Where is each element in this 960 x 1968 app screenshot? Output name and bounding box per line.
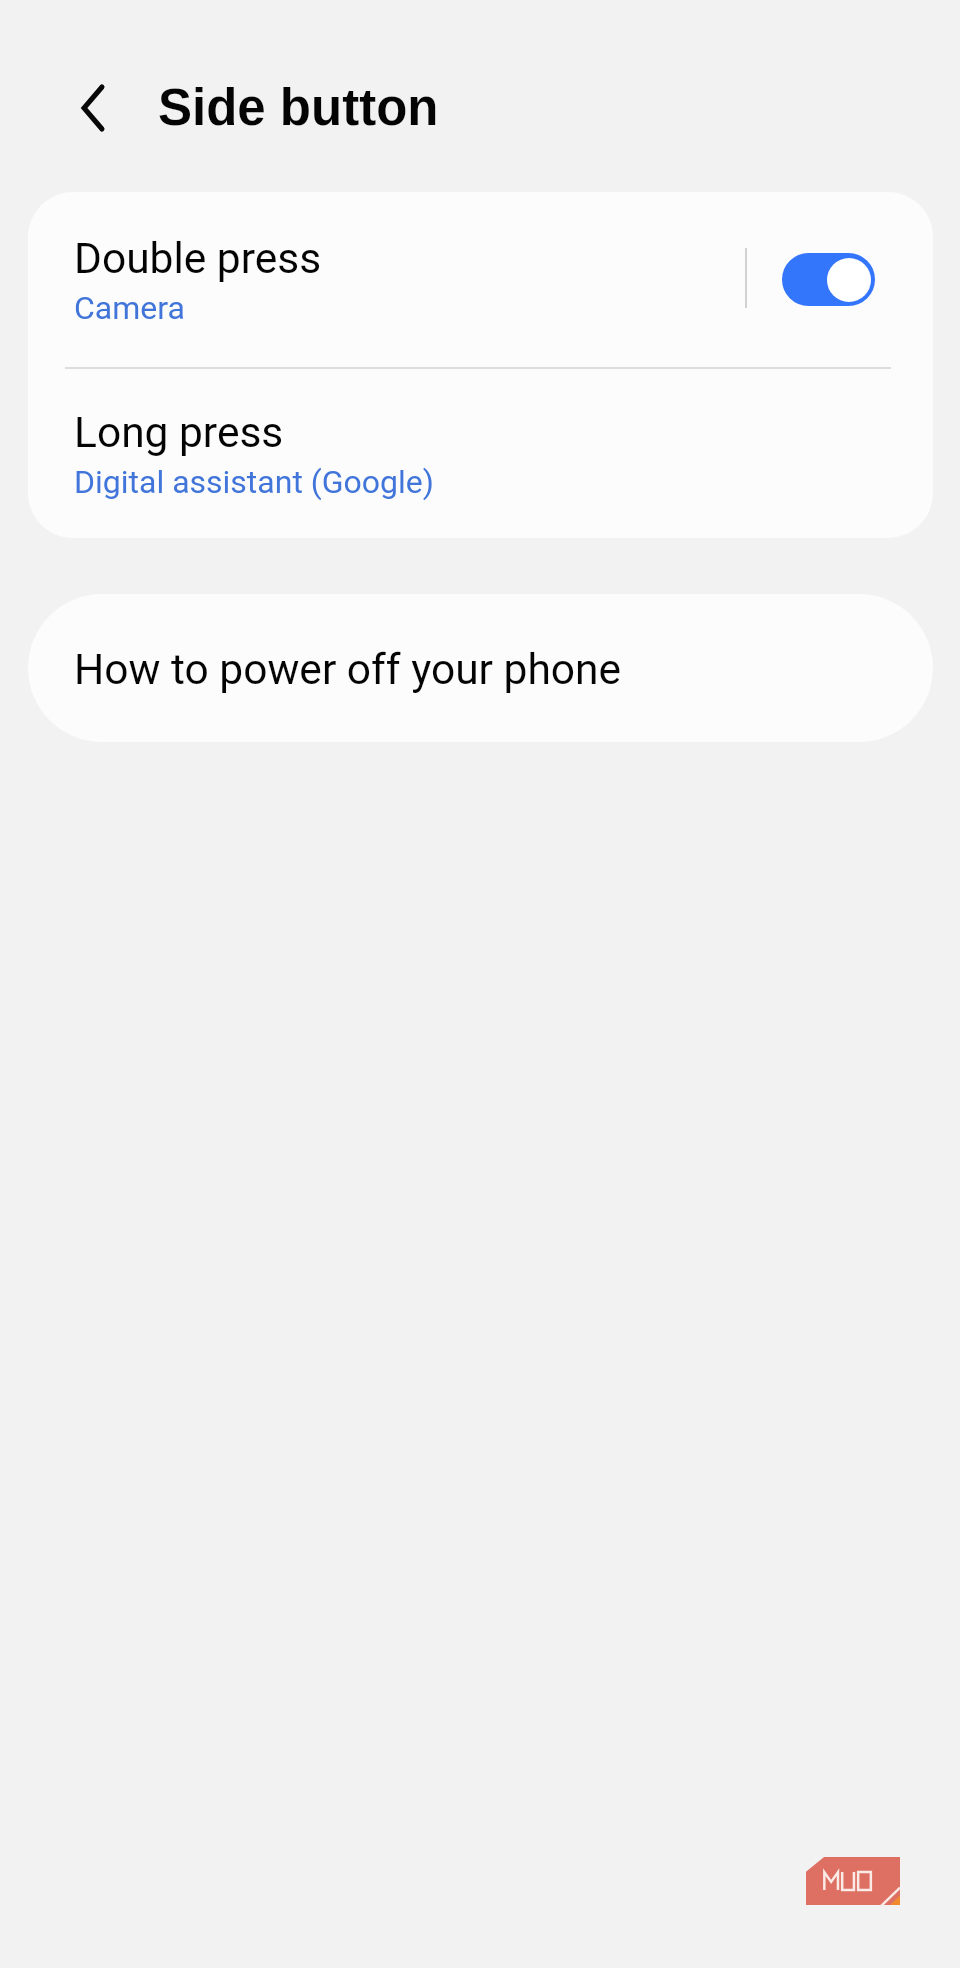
button[interactable]: Long press <box>28 369 933 538</box>
button[interactable]: Navigate up <box>53 68 132 147</box>
staticText: Double press <box>74 234 322 284</box>
staticText: Digital assistant (Google) <box>74 463 434 501</box>
button[interactable]: How to power off your phone <box>28 594 933 742</box>
staticText: How to power off your phone <box>74 645 622 695</box>
button[interactable]: Double press <box>28 192 745 367</box>
button[interactable]: Double press, on <box>747 192 933 367</box>
staticText: Camera <box>74 289 185 327</box>
staticText: Side button <box>158 79 439 136</box>
staticText: Long press <box>74 408 284 458</box>
